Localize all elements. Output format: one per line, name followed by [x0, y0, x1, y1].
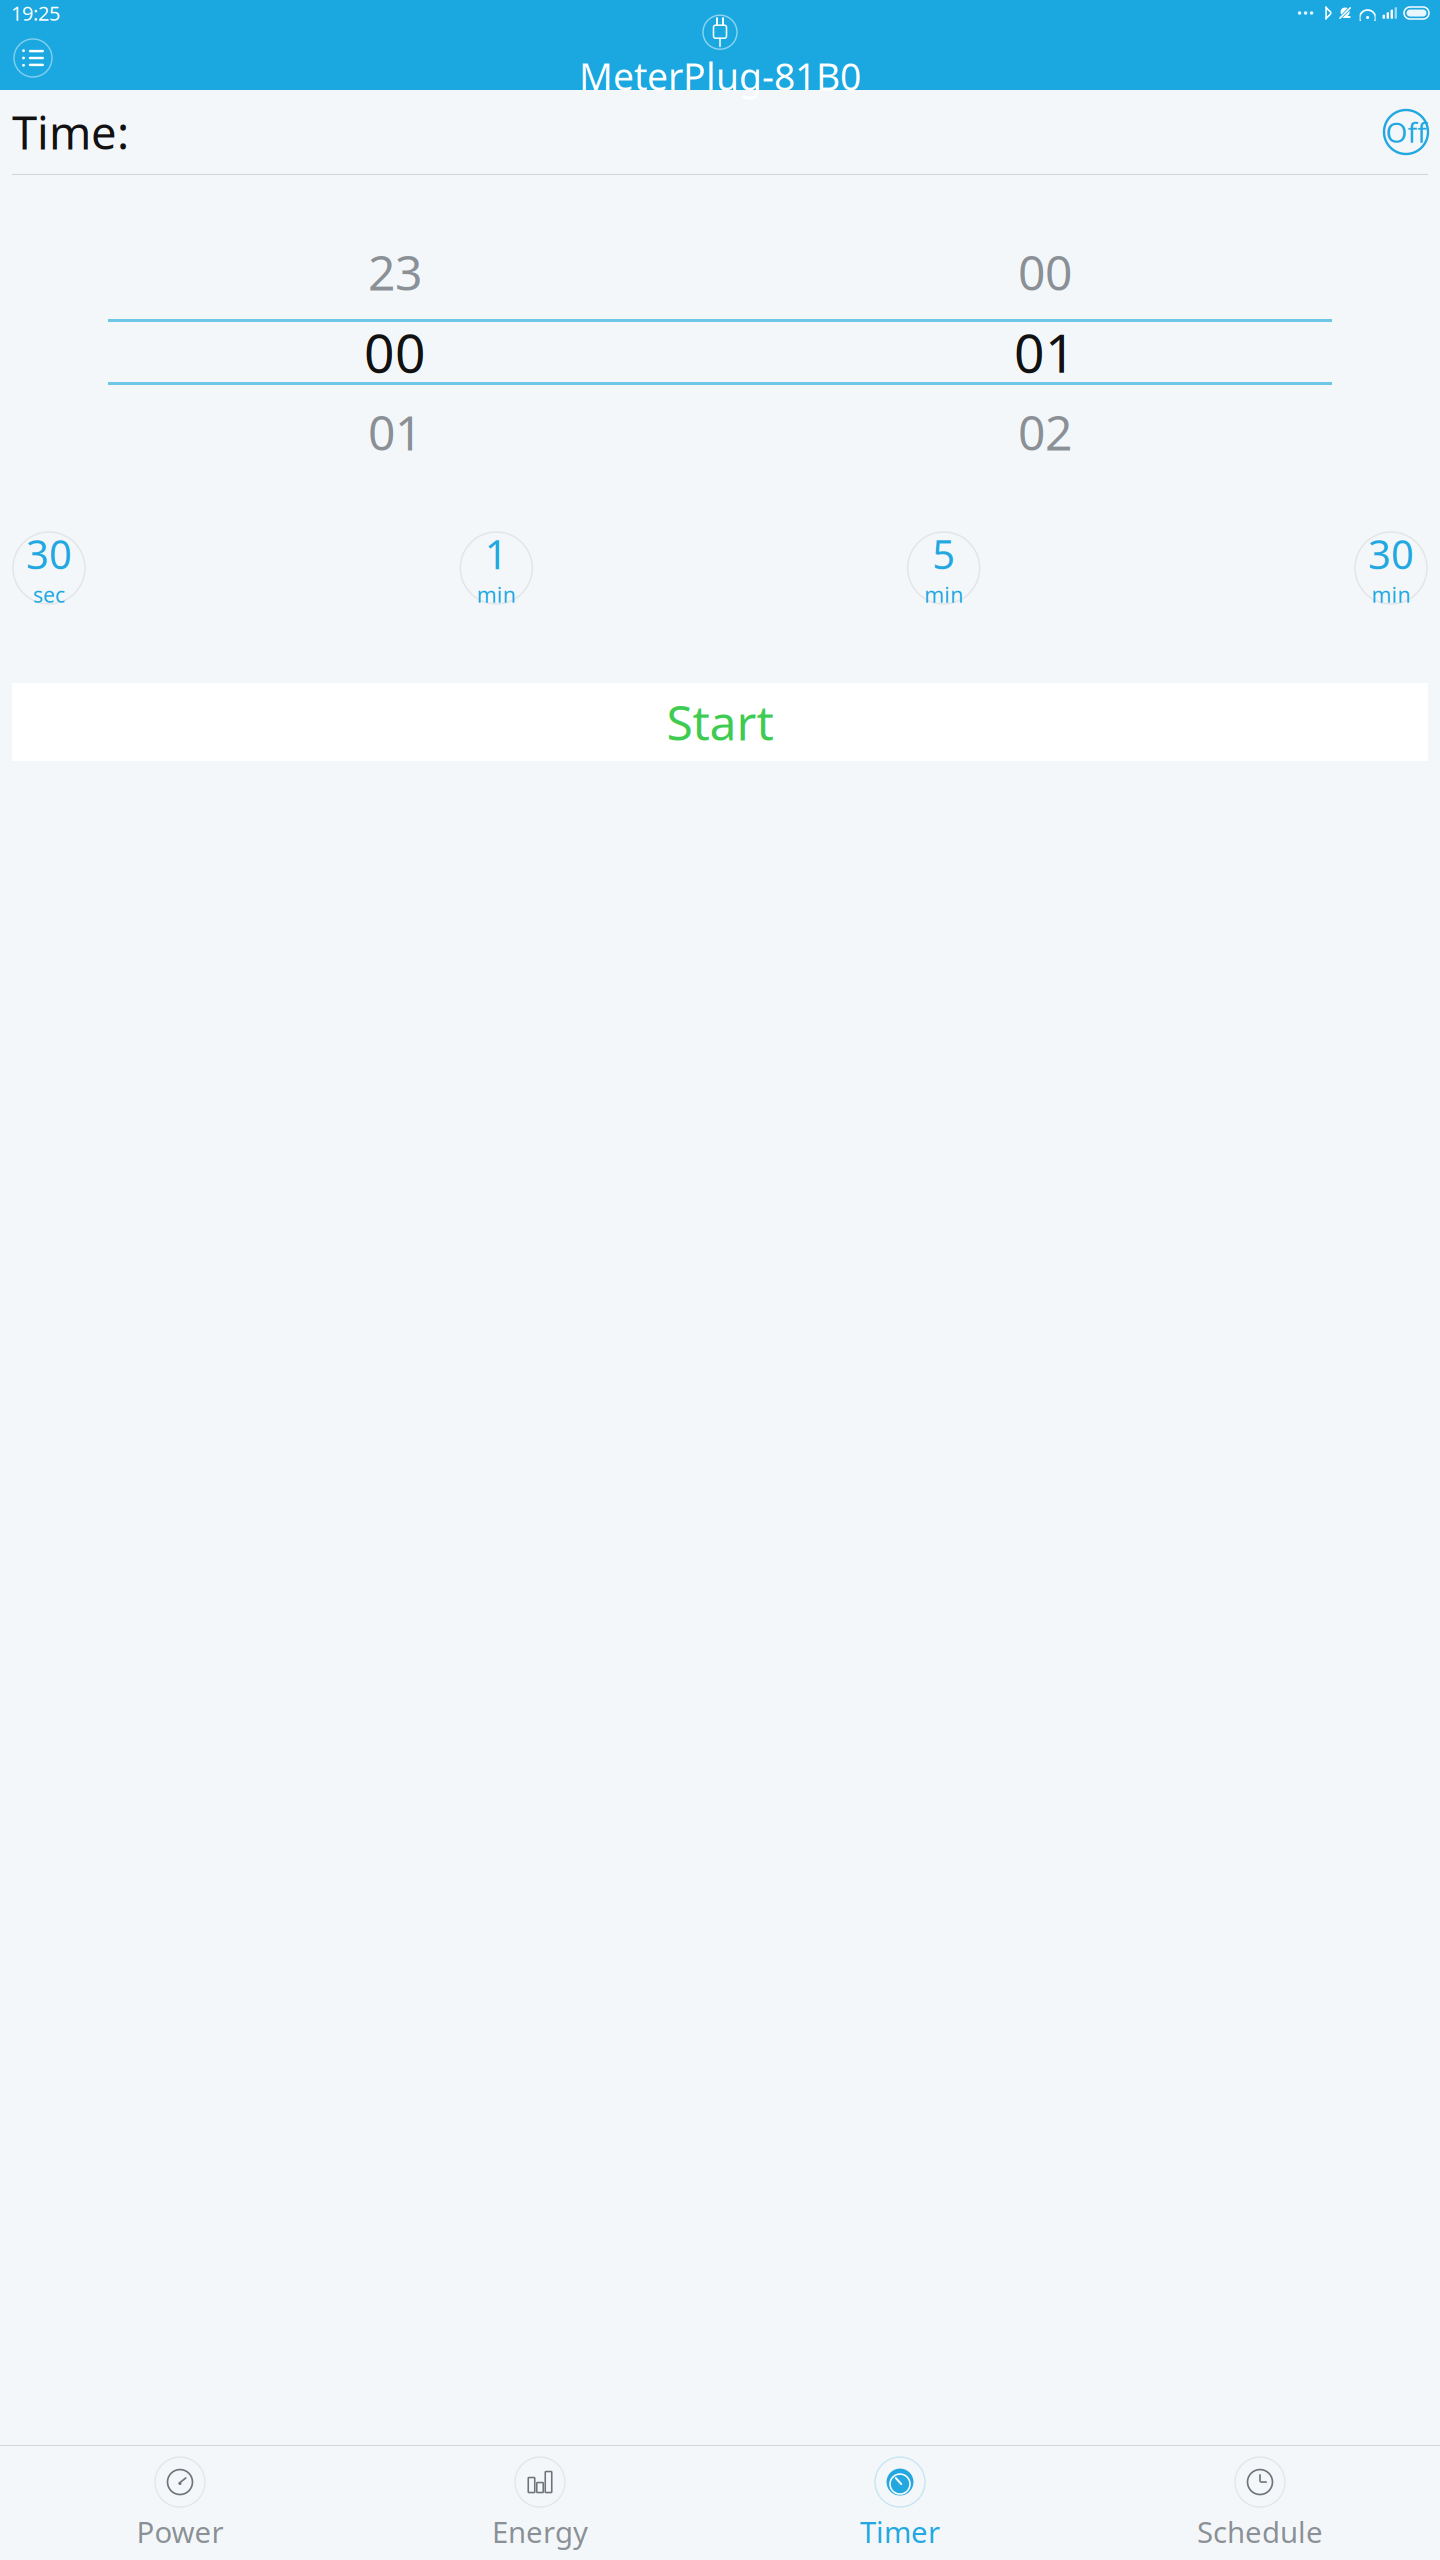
button[interactable]: 30: [1355, 532, 1427, 604]
staticText: 1: [485, 527, 508, 580]
staticText: 30: [26, 527, 72, 580]
staticText: 00: [364, 317, 426, 387]
button[interactable]: 5: [908, 532, 980, 604]
button[interactable]: Menu: [14, 39, 52, 77]
staticText: min: [924, 580, 963, 609]
staticText: 19:25: [11, 0, 60, 26]
staticText: 23: [368, 240, 422, 304]
staticText: Off: [1385, 113, 1426, 151]
staticText: Time:: [12, 102, 129, 162]
button[interactable]: Timer: [720, 2457, 1080, 2551]
staticText: min: [477, 580, 516, 609]
staticText: Energy: [492, 2512, 588, 2551]
staticText: 30: [1368, 527, 1414, 580]
button[interactable]: 30: [13, 532, 85, 604]
staticText: sec: [33, 580, 65, 609]
staticText: Start: [666, 690, 773, 754]
button[interactable]: Energy: [360, 2457, 720, 2551]
button[interactable]: Off: [1384, 110, 1428, 154]
staticText: min: [1371, 580, 1410, 609]
staticText: 01: [368, 400, 422, 464]
button[interactable]: Start: [12, 683, 1428, 761]
staticText: 01: [1014, 317, 1076, 387]
staticText: 02: [1018, 400, 1072, 464]
staticText: Schedule: [1197, 2512, 1323, 2551]
button[interactable]: Power: [0, 2457, 360, 2551]
staticText: Timer: [860, 2512, 940, 2551]
staticText: Power: [136, 2512, 223, 2551]
staticText: 5: [932, 527, 955, 580]
staticText: 00: [1018, 240, 1072, 304]
button[interactable]: Schedule: [1080, 2457, 1440, 2551]
button[interactable]: 1: [460, 532, 532, 604]
staticText: MeterPlug-81B0: [579, 51, 861, 101]
